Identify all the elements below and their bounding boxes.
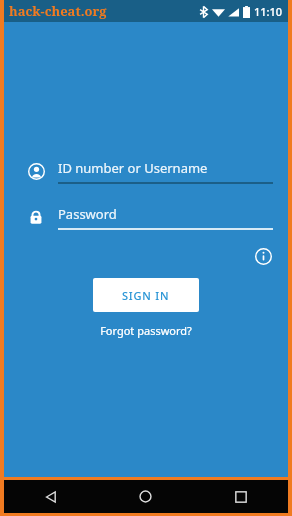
staticText: SIGN IN — [122, 288, 170, 303]
button[interactable]: Recent apps — [193, 480, 288, 513]
button[interactable]: Forgot password? — [94, 321, 198, 340]
staticText: Forgot password? — [100, 323, 192, 338]
button[interactable]: SIGN IN — [93, 278, 199, 312]
other: Account — [27, 162, 45, 180]
staticText: Password — [58, 205, 117, 223]
staticText: 11:10 — [254, 4, 283, 19]
staticText: hack-cheat.org — [9, 2, 107, 20]
button[interactable]: Information — [250, 243, 276, 269]
button[interactable]: Home — [98, 480, 193, 513]
staticText: ID number or Username — [58, 159, 208, 177]
button[interactable]: Back — [4, 480, 98, 513]
button[interactable]: Password — [4, 202, 288, 232]
button[interactable]: Account — [4, 156, 288, 186]
other: Password — [27, 208, 45, 226]
